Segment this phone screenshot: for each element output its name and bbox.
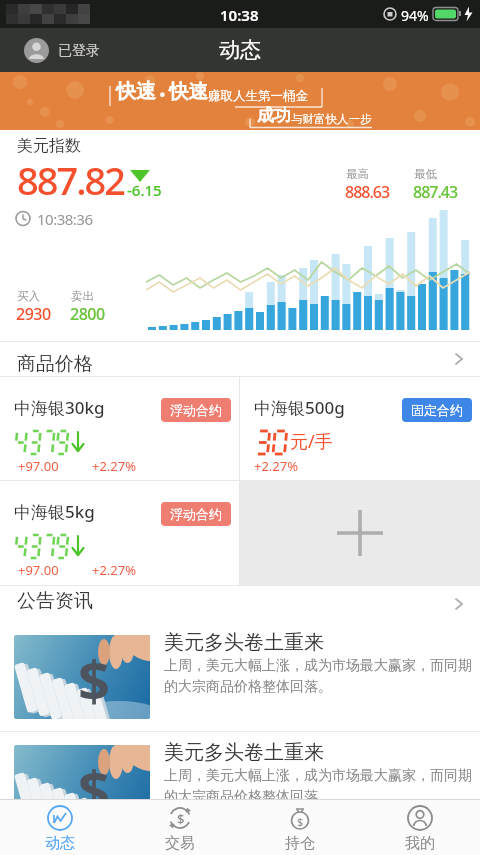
staticText: 888.63	[345, 181, 390, 203]
staticText: 中海银5kg	[14, 500, 95, 523]
staticText: 已登录	[58, 42, 100, 60]
staticText: 887.43	[413, 181, 458, 203]
staticText: 10:38	[220, 5, 259, 25]
staticText: 成功	[257, 105, 291, 126]
staticText: 上周，美元大幅上涨，成为市场最大赢家，而同期的大宗商品价格整体回落。	[164, 657, 480, 695]
staticText: 最低	[414, 167, 437, 181]
button[interactable]: $	[0, 622, 480, 731]
staticText: +97.00	[18, 457, 59, 475]
staticText: 上周，美元大幅上涨，成为市场最大赢家，而同期的大宗商品价格整体回落。	[164, 767, 480, 805]
staticText: $	[78, 641, 111, 717]
staticText: 买入	[17, 289, 40, 303]
staticText: -6.15	[127, 180, 162, 200]
button[interactable]: $	[0, 732, 480, 841]
staticText: 固定合约	[411, 402, 463, 418]
staticText: $	[177, 810, 185, 828]
staticText: $	[297, 814, 304, 829]
staticText: 元/手	[290, 429, 333, 454]
staticText: 中海银500g	[254, 396, 345, 419]
staticText: 快速	[169, 79, 208, 104]
staticText: 持仓	[285, 834, 315, 853]
staticText: 我的	[405, 834, 435, 853]
button[interactable]: 快速	[0, 72, 480, 130]
staticText: 快速	[116, 79, 156, 104]
staticText: 887.82	[17, 154, 125, 206]
staticText: $	[78, 751, 111, 827]
button[interactable]: 动态	[0, 800, 120, 855]
button[interactable]: 中海银30kg	[0, 377, 239, 480]
button[interactable]: 中海银5kg	[0, 481, 239, 585]
staticText: 2800	[70, 303, 105, 325]
staticText: +2.27%	[254, 457, 299, 475]
staticText: 美元指数	[17, 136, 81, 156]
staticText: 中海银30kg	[14, 396, 105, 419]
staticText: 公告资讯	[17, 589, 93, 613]
button[interactable]: 我的	[360, 800, 480, 855]
staticText: +2.27%	[92, 561, 137, 579]
staticText: 动态	[45, 834, 75, 853]
staticText: +2.27%	[92, 457, 137, 475]
button[interactable]: $	[120, 800, 240, 855]
button[interactable]	[240, 481, 480, 585]
staticText: 与财富快人一步	[291, 112, 372, 126]
staticText: +97.00	[18, 561, 59, 579]
staticText: 10:38:36	[37, 209, 93, 229]
button[interactable]	[0, 586, 480, 622]
staticText: 美元多头卷土重来	[164, 740, 324, 765]
staticText: 美元多头卷土重来	[164, 630, 324, 655]
staticText: •	[156, 85, 169, 104]
staticText: 卖出	[71, 289, 94, 303]
staticText: 动态	[219, 37, 261, 63]
staticText: 2930	[16, 303, 51, 325]
button[interactable]: $	[240, 800, 360, 855]
staticText: 交易	[165, 834, 195, 853]
staticText: 94%	[401, 6, 429, 25]
staticText: 最高	[346, 167, 369, 181]
staticText: 商品价格	[17, 352, 93, 376]
button[interactable]	[0, 342, 480, 376]
staticText: 赚取人生第一桶金	[208, 88, 308, 104]
button[interactable]: 已登录	[24, 38, 100, 63]
staticText: 浮动合约	[170, 506, 222, 522]
staticText: 浮动合约	[170, 402, 222, 418]
button[interactable]: 中海银500g	[240, 377, 480, 480]
